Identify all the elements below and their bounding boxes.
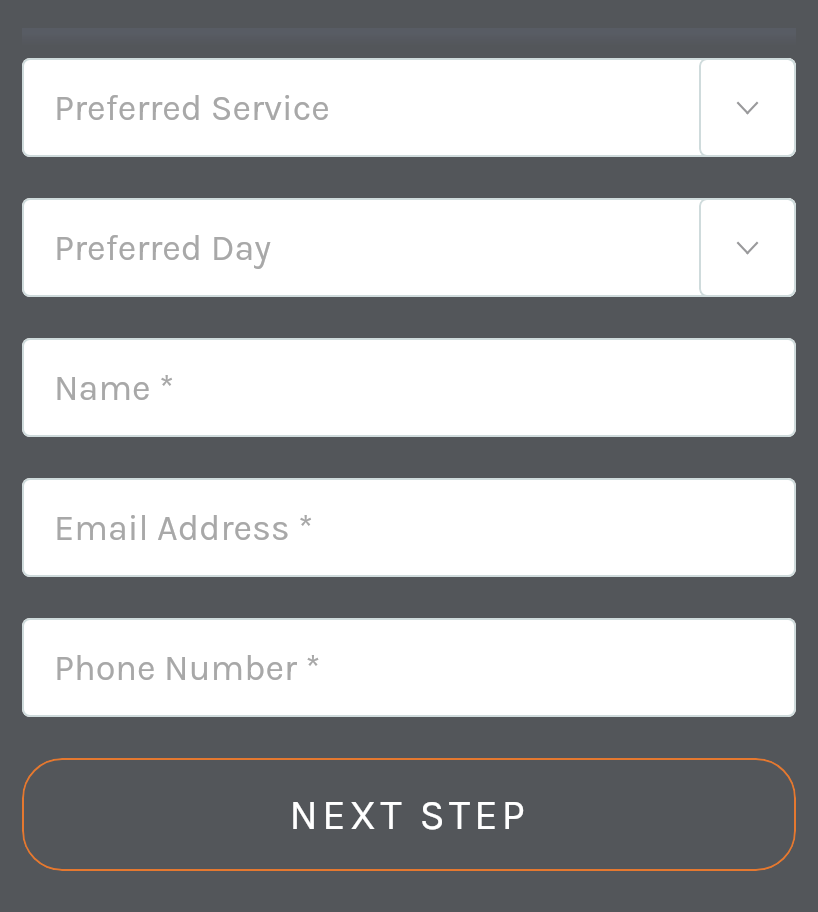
button[interactable]: Preferred Service (22, 58, 796, 157)
staticText: Preferred Day (54, 227, 271, 269)
button[interactable]: Name * (22, 338, 796, 437)
staticText: NEXT STEP (289, 790, 529, 839)
button[interactable]: Open Preferred Day options (699, 198, 796, 297)
button[interactable]: Email Address * (22, 478, 796, 577)
button[interactable]: Open Preferred Service options (699, 58, 796, 157)
staticText: Phone Number * (54, 647, 321, 689)
staticText: Name * (54, 367, 175, 409)
button[interactable]: Phone Number * (22, 618, 796, 717)
button[interactable]: Preferred Day (22, 198, 796, 297)
button[interactable]: NEXT STEP (22, 758, 796, 871)
staticText: Preferred Service (54, 87, 330, 129)
staticText: Email Address * (54, 507, 314, 549)
